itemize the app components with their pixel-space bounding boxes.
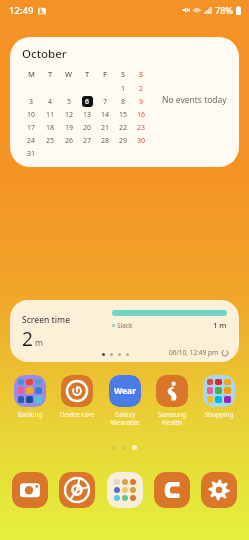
staticText: 11 (46, 110, 55, 120)
staticText: 24 (27, 136, 36, 146)
button[interactable]: Apps (107, 472, 143, 508)
staticText: 10 (27, 110, 36, 120)
staticText: 2 (139, 84, 144, 94)
staticText: 27 (83, 136, 92, 146)
staticText: S (121, 69, 126, 79)
staticText: 12:49 (9, 4, 34, 17)
button[interactable]: Shopping (196, 375, 242, 419)
staticText: 2 (22, 326, 33, 352)
staticText: 17 (27, 123, 36, 133)
staticText: Device care (54, 410, 100, 419)
staticText: 3 (29, 97, 34, 107)
staticText: Banking (7, 410, 53, 419)
button[interactable]: Galaxy Wearable (102, 375, 148, 427)
staticText: 22 (119, 123, 128, 133)
button[interactable]: Banking (7, 375, 53, 419)
other: Banking (14, 375, 46, 407)
staticText: 4 (48, 97, 53, 107)
button[interactable]: Chrome (59, 472, 95, 508)
button[interactable]: Camera (12, 472, 48, 508)
staticText: 18 (46, 123, 55, 133)
staticText: 9 (139, 97, 144, 107)
button[interactable]: October (10, 37, 239, 167)
other: Samsung Health (156, 375, 188, 407)
staticText: 13 (83, 110, 92, 120)
staticText: Galaxy Wearable (102, 410, 148, 427)
staticText: 16 (137, 110, 146, 120)
button[interactable]: Screen time (10, 300, 239, 362)
staticText: W (65, 69, 73, 79)
staticText: S (139, 69, 144, 79)
staticText: 20 (83, 123, 92, 133)
staticText: 06/10, 12:49 pm (169, 348, 219, 357)
staticText: T (85, 69, 90, 79)
staticText: m (35, 337, 43, 349)
staticText: 1 m (213, 320, 227, 330)
button[interactable]: Device care (54, 375, 100, 419)
staticText: No events today (162, 94, 227, 106)
staticText: 31 (27, 149, 36, 159)
staticText: 12 (65, 110, 74, 120)
button[interactable]: Phone (154, 472, 190, 508)
staticText: 19 (65, 123, 74, 133)
staticText: Samsung Health (149, 410, 195, 427)
staticText: 78% (215, 4, 233, 16)
staticText: Screen time (22, 314, 71, 326)
staticText: 25 (46, 136, 55, 146)
staticText: 7 (103, 97, 108, 107)
staticText: 23 (137, 123, 146, 133)
staticText: 6 (85, 97, 90, 107)
staticText: 5 (67, 97, 72, 107)
other: Shopping (203, 375, 235, 407)
staticText: 30 (137, 136, 146, 146)
other: Device care (61, 375, 93, 407)
staticText: 21 (101, 123, 110, 133)
staticText: 26 (65, 136, 74, 146)
other: Galaxy Wearable (109, 375, 141, 407)
staticText: 28 (101, 136, 110, 146)
staticText: 1 (121, 84, 126, 94)
staticText: T (48, 69, 53, 79)
staticText: F (103, 69, 107, 79)
staticText: 8 (121, 97, 126, 107)
staticText: Shopping (196, 410, 242, 419)
staticText: October (22, 46, 67, 62)
staticText: 14 (101, 110, 110, 120)
staticText: M (28, 69, 35, 79)
staticText: Slack (117, 321, 133, 330)
staticText: Wear (114, 385, 137, 397)
button[interactable]: Settings (201, 472, 237, 508)
staticText: 15 (119, 110, 128, 120)
button[interactable]: Samsung Health (149, 375, 195, 427)
staticText: 29 (119, 136, 128, 146)
